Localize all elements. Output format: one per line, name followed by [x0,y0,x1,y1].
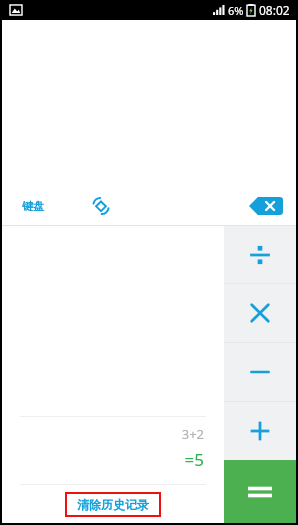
button[interactable]: Divide [224,226,296,283]
button[interactable]: 清除历史记录 [65,492,161,517]
button[interactable]: 3+2 [2,417,224,479]
staticText: 6% [228,3,244,18]
staticText: =5 [184,448,204,471]
button[interactable]: Rotate [88,193,114,219]
button[interactable]: Equals [224,460,296,523]
staticText: 3+2 [181,425,204,443]
button[interactable]: Backspace [249,197,283,215]
staticText: 清除历史记录 [77,497,149,512]
button[interactable]: 键盘 [18,196,48,216]
button[interactable]: Plus [224,402,296,460]
button[interactable]: Minus [224,343,296,401]
staticText: 08:02 [259,2,290,18]
staticText: 键盘 [22,199,44,213]
button[interactable]: Multiply [224,284,296,342]
